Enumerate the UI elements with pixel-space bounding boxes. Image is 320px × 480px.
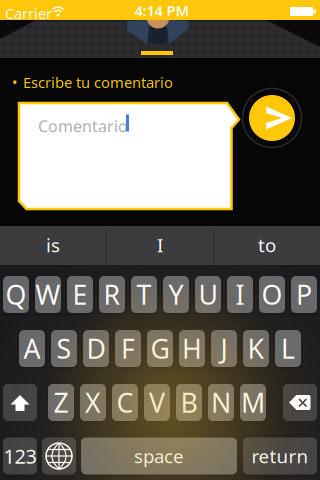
- button[interactable]: Delete: [283, 384, 317, 421]
- staticText: Z: [53, 385, 68, 420]
- staticText: O: [261, 277, 282, 312]
- button[interactable]: is: [1, 226, 105, 263]
- button[interactable]: A: [19, 330, 45, 367]
- staticText: K: [247, 331, 264, 366]
- button[interactable]: R: [99, 276, 125, 313]
- button[interactable]: B: [176, 384, 202, 421]
- button[interactable]: I: [227, 276, 253, 313]
- staticText: G: [150, 331, 169, 366]
- button[interactable]: C: [112, 384, 138, 421]
- button[interactable]: Y: [163, 276, 189, 313]
- button[interactable]: K: [243, 330, 269, 367]
- button[interactable]: V: [144, 384, 170, 421]
- staticText: is: [46, 233, 60, 257]
- button[interactable]: return: [243, 437, 317, 474]
- button[interactable]: Enviar comentario: [241, 87, 302, 148]
- staticText: I: [235, 277, 244, 312]
- button[interactable]: N: [208, 384, 234, 421]
- staticText: V: [149, 385, 165, 420]
- staticText: return: [251, 444, 308, 468]
- button[interactable]: G: [147, 330, 173, 367]
- button[interactable]: L: [275, 330, 301, 367]
- staticText: S: [56, 331, 71, 366]
- button[interactable]: Shift: [3, 384, 37, 421]
- staticText: H: [182, 331, 202, 366]
- button[interactable]: S: [51, 330, 77, 367]
- staticText: Comentario: [38, 115, 128, 137]
- staticText: •: [12, 72, 18, 92]
- button[interactable]: I: [108, 226, 212, 263]
- staticText: Escribe tu comentario: [23, 72, 173, 92]
- staticText: P: [296, 277, 312, 312]
- button[interactable]: H: [179, 330, 205, 367]
- staticText: I: [157, 233, 163, 257]
- staticText: Q: [5, 277, 26, 312]
- button[interactable]: J: [211, 330, 237, 367]
- staticText: U: [198, 277, 217, 312]
- button[interactable]: F: [115, 330, 141, 367]
- staticText: N: [211, 385, 231, 420]
- staticText: space: [134, 444, 184, 468]
- button[interactable]: T: [131, 276, 157, 313]
- button[interactable]: M: [240, 384, 266, 421]
- staticText: to: [258, 233, 276, 257]
- button[interactable]: O: [259, 276, 285, 313]
- button[interactable]: U: [195, 276, 221, 313]
- staticText: F: [121, 331, 135, 366]
- button[interactable]: D: [83, 330, 109, 367]
- staticText: 4:14 PM: [134, 1, 189, 20]
- button[interactable]: Q: [3, 276, 29, 313]
- staticText: 123: [3, 443, 36, 469]
- staticText: J: [220, 331, 227, 366]
- button[interactable]: Z: [48, 384, 74, 421]
- staticText: C: [116, 385, 133, 420]
- staticText: Carrier: [5, 3, 52, 23]
- staticText: D: [86, 331, 105, 366]
- button[interactable]: E: [67, 276, 93, 313]
- staticText: M: [241, 385, 265, 420]
- staticText: T: [136, 277, 151, 312]
- button[interactable]: space: [81, 437, 237, 474]
- button[interactable]: W: [35, 276, 61, 313]
- button[interactable]: Next keyboard: [42, 437, 76, 474]
- staticText: W: [35, 277, 60, 312]
- staticText: Y: [168, 277, 183, 312]
- button[interactable]: to: [215, 226, 319, 263]
- button[interactable]: X: [80, 384, 106, 421]
- staticText: E: [72, 277, 87, 312]
- staticText: A: [23, 331, 40, 366]
- staticText: X: [85, 385, 101, 420]
- staticText: R: [103, 277, 120, 312]
- button[interactable]: P: [291, 276, 317, 313]
- button[interactable]: 123: [3, 437, 37, 474]
- staticText: L: [281, 331, 295, 366]
- staticText: B: [180, 385, 197, 420]
